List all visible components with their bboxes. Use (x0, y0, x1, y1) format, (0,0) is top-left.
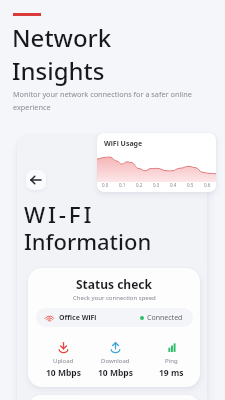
staticText: 10 Mbps (98, 367, 133, 379)
staticText: Download (101, 357, 130, 365)
staticText: Upload (53, 357, 74, 365)
staticText: Information (24, 226, 152, 256)
staticText: Status check (76, 276, 152, 292)
staticText: Monitor your network connections for a s… (13, 89, 192, 112)
staticText: Check your connection speed (73, 294, 156, 302)
staticText: 0.3 (153, 182, 160, 188)
staticText: 0.1 (119, 182, 126, 188)
staticText: 10 Mbps (46, 367, 81, 379)
staticText: Ping (165, 357, 178, 365)
button[interactable]: Office WiFi (36, 308, 193, 327)
staticText: 0.0 (102, 182, 109, 188)
staticText: WI-FI (24, 199, 95, 230)
staticText: 0.5 (187, 182, 194, 188)
staticText: Insights (12, 54, 105, 87)
staticText: 0.6 (204, 182, 211, 188)
staticText: Network (12, 21, 112, 54)
button[interactable]: Back (26, 170, 46, 190)
staticText: WiFi Usage (104, 139, 143, 149)
staticText: Connected (147, 313, 183, 323)
staticText: 0.4 (170, 182, 177, 188)
staticText: 19 ms (159, 367, 184, 379)
staticText: 0.2 (136, 182, 143, 188)
staticText: Office WiFi (59, 313, 97, 323)
